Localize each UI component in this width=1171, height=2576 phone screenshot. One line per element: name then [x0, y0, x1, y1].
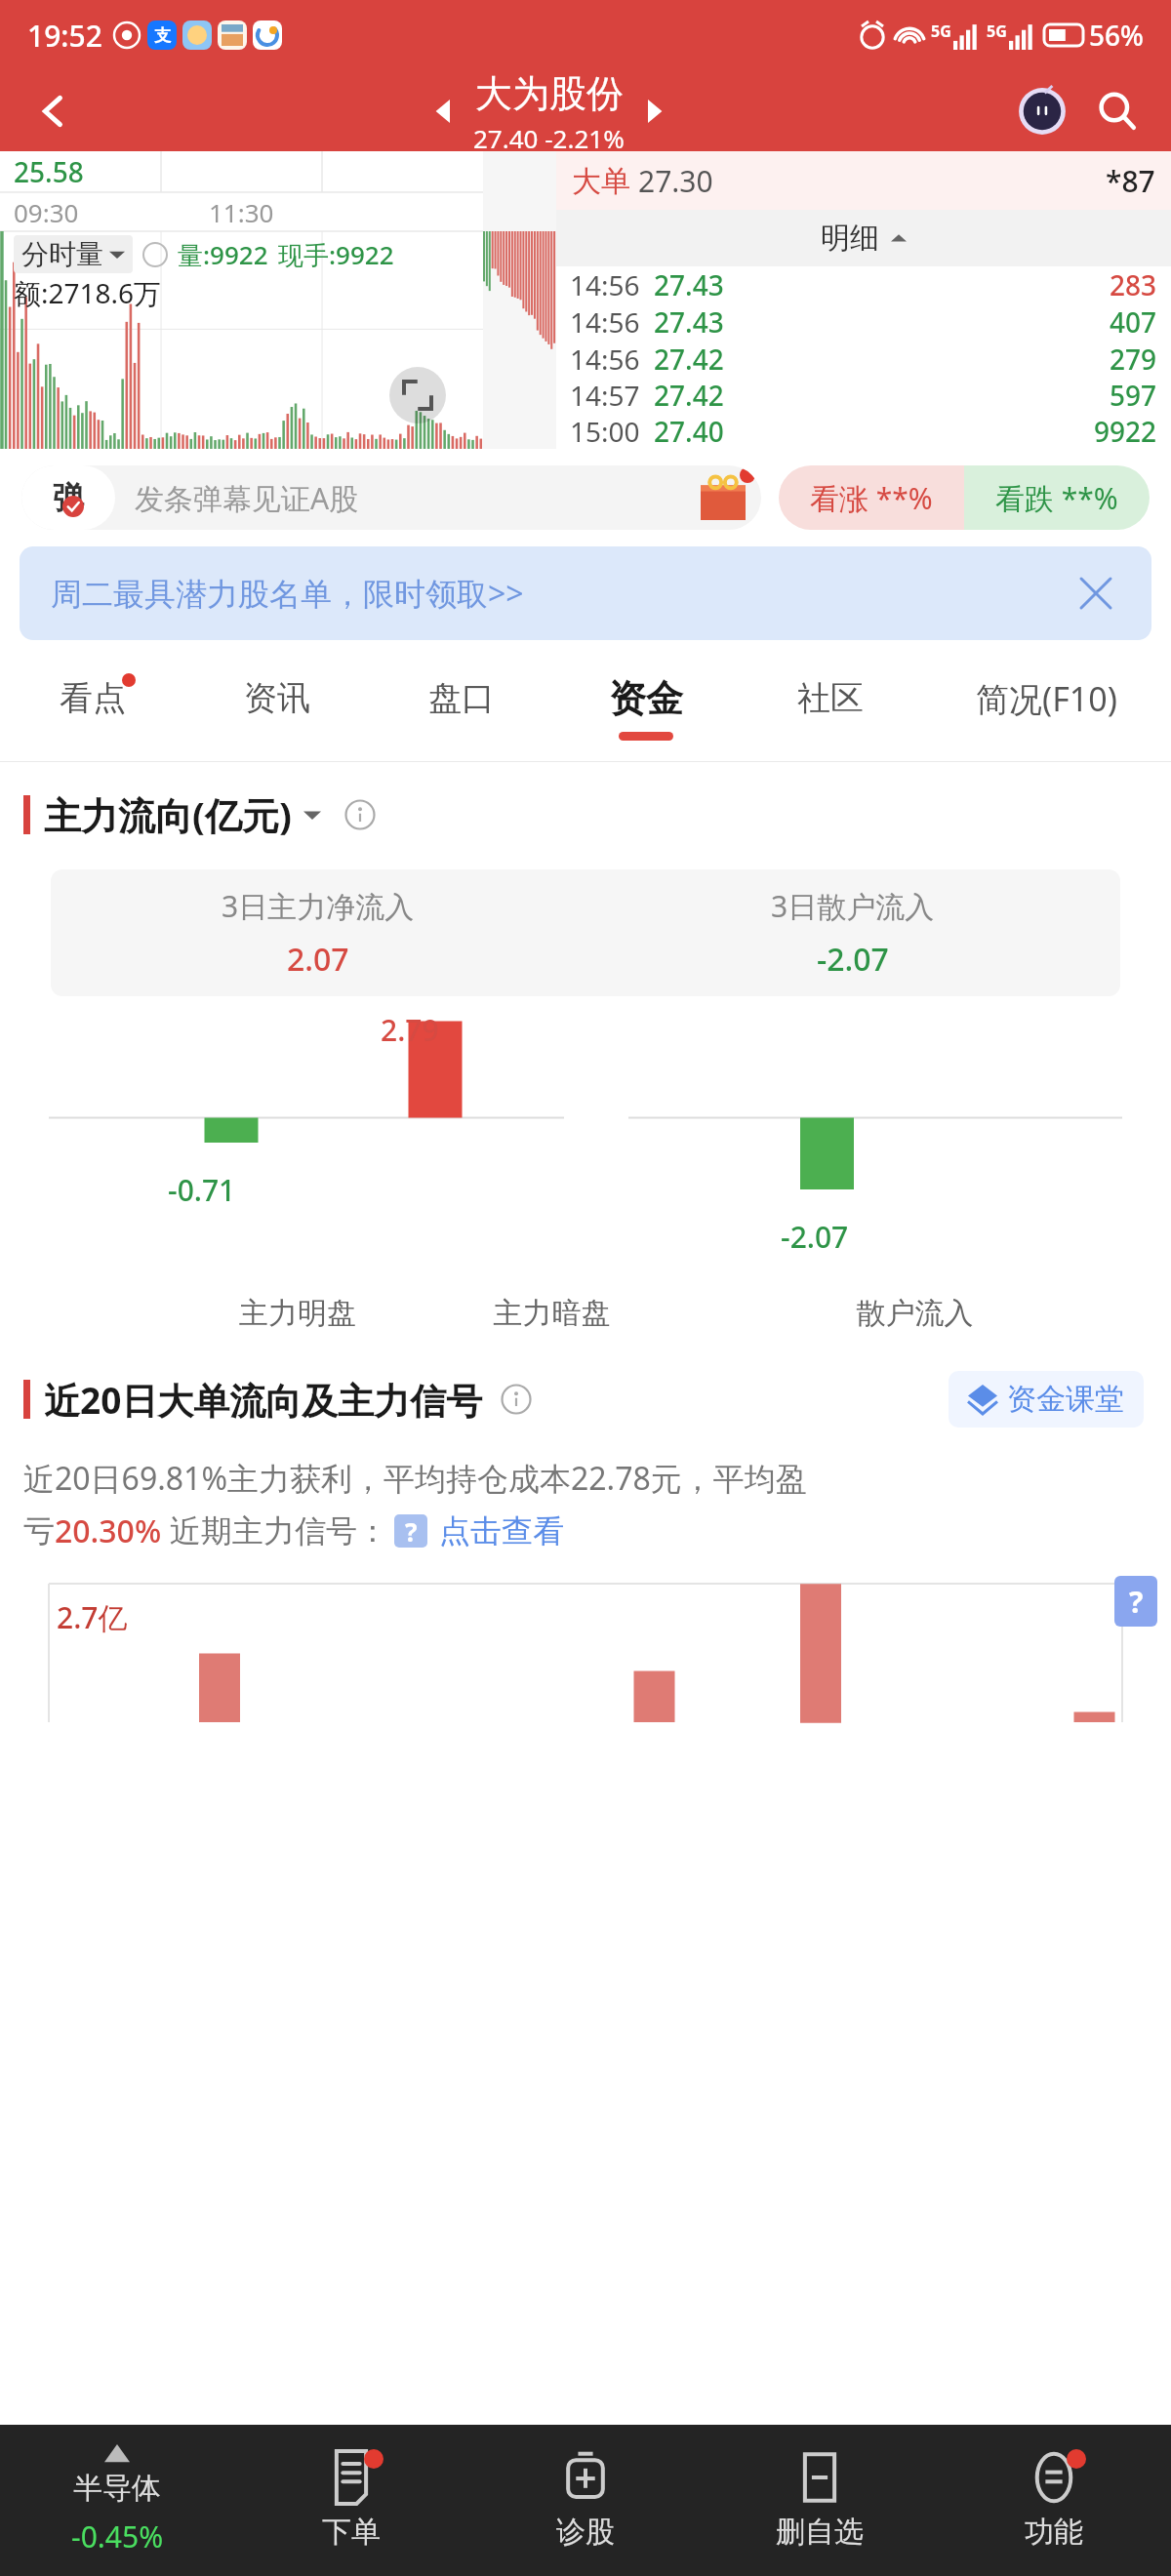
- button[interactable]: 14:56: [556, 341, 1171, 377]
- staticText: 3日主力净流入: [222, 886, 415, 926]
- staticText: 09:30: [14, 195, 79, 229]
- staticText: 看跌 **%: [995, 478, 1118, 518]
- staticText: 大单: [572, 163, 630, 200]
- staticText: 散户流入: [707, 1295, 1122, 1332]
- button[interactable]: Close: [1071, 569, 1120, 618]
- staticText: 社区: [797, 677, 864, 719]
- button[interactable]: 资金课堂: [949, 1371, 1144, 1428]
- button[interactable]: 下单: [234, 2425, 468, 2576]
- button[interactable]: Fullscreen: [389, 367, 446, 423]
- staticText: 量:9922: [178, 237, 268, 272]
- staticText: 盘口: [428, 677, 495, 719]
- staticText: 2.79: [381, 1010, 439, 1050]
- button[interactable]: 看跌 **%: [964, 465, 1150, 530]
- staticText: *87: [1106, 161, 1155, 201]
- button[interactable]: Help: [142, 242, 168, 267]
- staticText: 亏: [23, 1511, 55, 1550]
- staticText: 2.7亿: [57, 1597, 128, 1637]
- button[interactable]: Next stock: [625, 82, 683, 141]
- button[interactable]: 主力流向(亿元): [44, 789, 321, 840]
- button[interactable]: Chart help: [1114, 1576, 1157, 1627]
- staticText: 诊股: [556, 2514, 615, 2551]
- staticText: 597: [1110, 377, 1157, 413]
- staticText: 资金: [609, 675, 683, 722]
- staticText: 发条弹幕见证A股: [135, 478, 359, 518]
- button[interactable]: Search: [1083, 77, 1151, 145]
- button[interactable]: Info: [344, 799, 376, 830]
- button[interactable]: Info: [501, 1384, 532, 1415]
- staticText: 主力暗盘: [396, 1295, 707, 1332]
- staticText: 弹: [53, 478, 84, 517]
- staticText: ?: [1129, 1582, 1144, 1622]
- staticText: 14:56: [570, 303, 640, 341]
- staticText: 支: [154, 25, 171, 46]
- button[interactable]: 弹: [21, 465, 761, 530]
- button[interactable]: 看涨 **%: [779, 465, 964, 530]
- staticText: 27.43: [654, 266, 724, 303]
- staticText: 27.43: [654, 303, 724, 341]
- button[interactable]: 周二最具潜力股名单，限时领取>>: [20, 546, 1151, 640]
- button[interactable]: 分时量: [14, 235, 133, 273]
- staticText: 现手:9922: [278, 237, 394, 272]
- button[interactable]: 简况(F10): [922, 654, 1171, 761]
- staticText: 额:2718.6万: [14, 274, 162, 311]
- button[interactable]: Previous stock: [415, 82, 473, 141]
- staticText: 27.40: [654, 413, 724, 449]
- button[interactable]: 删自选: [703, 2425, 937, 2576]
- button[interactable]: 半导体: [0, 2425, 234, 2576]
- button[interactable]: 看点: [0, 654, 184, 761]
- staticText: 5G: [931, 20, 951, 42]
- button[interactable]: 明细: [556, 210, 1171, 266]
- button[interactable]: 资讯: [184, 654, 369, 761]
- staticText: -0.45%: [71, 2516, 164, 2556]
- staticText: 看涨 **%: [810, 478, 933, 518]
- button[interactable]: Signal help: [394, 1514, 427, 1548]
- staticText: 5G: [987, 20, 1007, 42]
- staticText: 近20日69.81%主力获利，平均持仓成本22.78元，平均盈: [23, 1457, 807, 1500]
- button[interactable]: 14:57: [556, 377, 1171, 413]
- staticText: 3日散户流入: [771, 886, 935, 926]
- button[interactable]: AI assistant: [1011, 80, 1073, 142]
- staticText: 407: [1110, 303, 1157, 341]
- staticText: 27.42: [654, 377, 724, 413]
- staticText: 近20日大单流向及主力信号: [44, 1375, 483, 1425]
- staticText: 14:56: [570, 266, 640, 303]
- staticText: 9922: [1094, 413, 1157, 449]
- staticText: 20.30%: [55, 1509, 162, 1552]
- staticText: 主力流向(亿元): [44, 789, 292, 840]
- staticText: -2.07: [781, 1217, 849, 1257]
- staticText: 周二最具潜力股名单，限时领取>>: [51, 572, 524, 615]
- button[interactable]: 诊股: [468, 2425, 703, 2576]
- staticText: 27.42: [654, 341, 724, 377]
- staticText: 近期主力信号：: [170, 1511, 388, 1550]
- staticText: 14:56: [570, 341, 640, 377]
- button[interactable]: 14:56: [556, 303, 1171, 341]
- staticText: 27.30: [638, 161, 713, 201]
- button[interactable]: 资金: [553, 654, 738, 761]
- staticText: 分时量: [21, 237, 103, 271]
- staticText: 简况(F10): [976, 676, 1117, 721]
- button[interactable]: 社区: [738, 654, 922, 761]
- staticText: 25.58: [14, 153, 84, 190]
- staticText: 14:57: [570, 377, 640, 413]
- staticText: 功能: [1025, 2514, 1083, 2551]
- button[interactable]: 15:00: [556, 413, 1171, 449]
- button[interactable]: Back: [20, 77, 88, 145]
- staticText: 半导体: [73, 2470, 161, 2507]
- staticText: 19:52: [27, 16, 102, 56]
- staticText: 资金课堂: [1007, 1381, 1124, 1418]
- button[interactable]: 功能: [937, 2425, 1171, 2576]
- staticText: 主力明盘: [199, 1295, 396, 1332]
- staticText: 资讯: [244, 677, 310, 719]
- button[interactable]: 点击查看: [439, 1511, 564, 1550]
- staticText: -2.07: [817, 938, 889, 981]
- button[interactable]: 14:56: [556, 266, 1171, 303]
- staticText: 下单: [322, 2514, 381, 2551]
- staticText: 删自选: [776, 2514, 864, 2551]
- staticText: ?: [405, 1514, 418, 1548]
- staticText: 15:00: [570, 413, 640, 449]
- staticText: 看点: [60, 677, 126, 719]
- staticText: -0.71: [168, 1170, 236, 1210]
- staticText: 27.40 -2.21%: [473, 121, 625, 151]
- button[interactable]: 盘口: [369, 654, 553, 761]
